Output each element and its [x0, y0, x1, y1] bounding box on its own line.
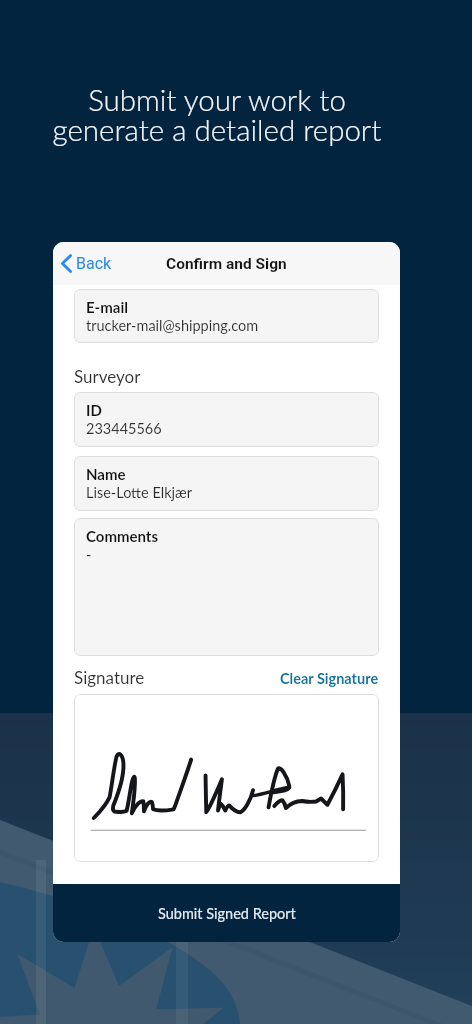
staticText: Confirm and Sign — [166, 255, 287, 273]
staticText: Signature — [74, 667, 145, 687]
staticText: 233445566 — [86, 420, 162, 437]
staticText: E-mail — [86, 298, 128, 316]
button[interactable]: ID — [74, 392, 379, 447]
button[interactable]: Name — [74, 456, 379, 511]
staticText: Lise-Lotte Elkjær — [86, 484, 193, 501]
staticText: Submit Signed Report — [158, 905, 296, 922]
button[interactable]: Back — [57, 248, 120, 279]
staticText: Comments — [86, 527, 159, 545]
button[interactable]: Submit Signed Report — [53, 884, 400, 942]
staticText: ID — [86, 401, 102, 419]
staticText: Back — [76, 254, 112, 273]
button[interactable]: Clear Signature — [280, 670, 379, 687]
button[interactable]: Signature pad — [74, 694, 379, 862]
button[interactable]: E-mail — [74, 289, 379, 343]
staticText: trucker-mail@shipping.com — [86, 317, 259, 334]
staticText: Surveyor — [74, 366, 141, 386]
button[interactable]: Comments — [74, 518, 379, 656]
staticText: Submit your work to generate a detailed … — [0, 82, 453, 147]
staticText: - — [86, 546, 92, 563]
staticText: Name — [86, 465, 126, 483]
